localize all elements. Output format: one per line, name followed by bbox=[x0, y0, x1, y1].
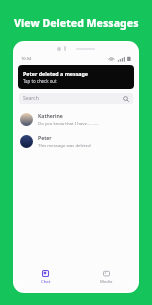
staticText: Peter deleted a message bbox=[23, 70, 88, 77]
staticText: Media bbox=[100, 279, 113, 285]
staticText: View Deleted Messages bbox=[14, 16, 139, 30]
button[interactable]: Peter bbox=[15, 130, 137, 152]
staticText: This message was deleted bbox=[38, 142, 91, 148]
button[interactable]: Search bbox=[19, 93, 133, 104]
button[interactable]: Media bbox=[76, 264, 137, 291]
button[interactable]: Chat bbox=[15, 264, 76, 291]
staticText: 10:04 bbox=[21, 56, 32, 61]
staticText: Tap to check out bbox=[23, 78, 57, 84]
staticText: Do you know that I have.......... bbox=[38, 120, 99, 126]
button[interactable]: Katherine bbox=[15, 108, 137, 130]
staticText: Search bbox=[23, 95, 39, 102]
staticText: Peter bbox=[38, 134, 52, 141]
staticText: Chat bbox=[41, 279, 51, 285]
button[interactable]: Peter deleted a message bbox=[18, 65, 134, 89]
staticText: Katherine bbox=[38, 112, 63, 119]
